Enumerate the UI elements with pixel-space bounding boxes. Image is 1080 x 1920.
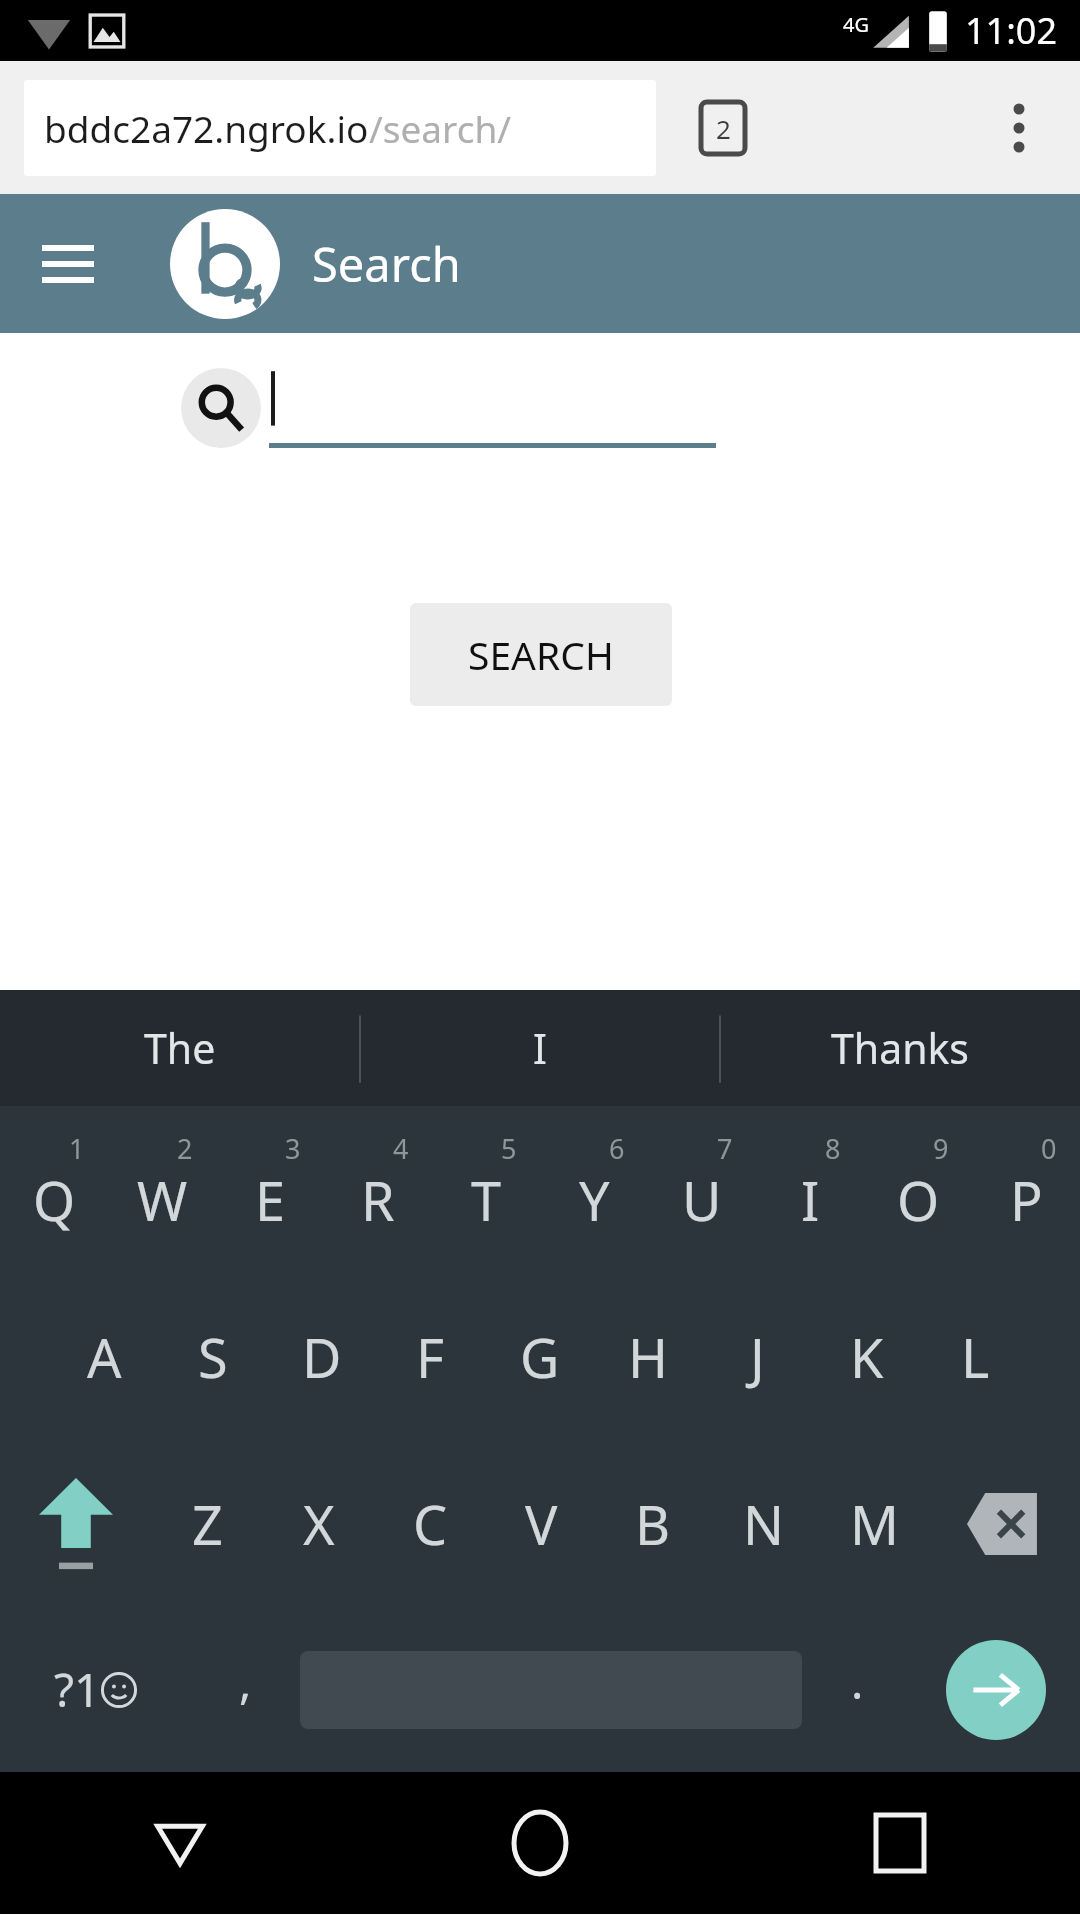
- staticText: 2: [177, 1130, 193, 1167]
- staticText: W: [137, 1163, 188, 1237]
- staticText: O: [897, 1163, 940, 1237]
- staticText: ?1: [54, 1658, 101, 1721]
- button[interactable]: N: [708, 1440, 819, 1607]
- button[interactable]: [269, 368, 716, 448]
- button[interactable]: 6: [540, 1106, 648, 1273]
- button[interactable]: Z: [151, 1440, 263, 1607]
- button[interactable]: Tabs: [688, 93, 758, 163]
- staticText: L: [961, 1320, 990, 1394]
- button[interactable]: Back: [0, 1772, 360, 1914]
- button[interactable]: Menu: [28, 224, 108, 304]
- button[interactable]: Search: [181, 368, 261, 448]
- staticText: T: [471, 1163, 502, 1237]
- button[interactable]: L: [921, 1273, 1030, 1440]
- staticText: Search: [312, 232, 461, 296]
- button[interactable]: SEARCH: [410, 603, 672, 706]
- button[interactable]: A: [50, 1273, 158, 1440]
- staticText: bddc2a72.ngrok.io: [44, 103, 369, 153]
- button[interactable]: 9: [864, 1106, 972, 1273]
- button[interactable]: F: [376, 1273, 485, 1440]
- staticText: 9: [933, 1130, 949, 1167]
- button[interactable]: The: [0, 990, 360, 1106]
- staticText: .: [851, 1650, 864, 1713]
- button[interactable]: 5: [432, 1106, 540, 1273]
- staticText: N: [743, 1487, 785, 1561]
- button[interactable]: B: [597, 1440, 708, 1607]
- button[interactable]: 7: [648, 1106, 756, 1273]
- button[interactable]: M: [819, 1440, 930, 1607]
- staticText: F: [416, 1320, 445, 1394]
- button[interactable]: Backspace: [930, 1440, 1080, 1607]
- staticText: C: [413, 1487, 448, 1561]
- button[interactable]: I: [360, 990, 720, 1106]
- staticText: K: [850, 1320, 884, 1394]
- button[interactable]: Symbols: [0, 1607, 190, 1772]
- button[interactable]: 4: [324, 1106, 432, 1273]
- staticText: D: [302, 1320, 342, 1394]
- staticText: J: [750, 1320, 765, 1394]
- staticText: 5: [501, 1130, 517, 1167]
- button[interactable]: Logo: [170, 209, 280, 319]
- staticText: 11:02: [965, 6, 1058, 55]
- staticText: 7: [717, 1130, 733, 1167]
- staticText: I: [533, 1020, 547, 1076]
- staticText: Y: [579, 1163, 610, 1237]
- button[interactable]: H: [594, 1273, 703, 1440]
- button[interactable]: K: [812, 1273, 921, 1440]
- staticText: 4: [393, 1130, 409, 1167]
- staticText: Q: [33, 1163, 76, 1237]
- staticText: P: [1010, 1163, 1043, 1237]
- staticText: 2: [716, 111, 731, 146]
- staticText: 4G: [843, 11, 869, 38]
- staticText: U: [682, 1163, 722, 1237]
- button[interactable]: bddc2a72.ngrok.io: [24, 80, 656, 176]
- button[interactable]: J: [703, 1273, 812, 1440]
- button[interactable]: .: [802, 1607, 912, 1772]
- staticText: 6: [609, 1130, 625, 1167]
- staticText: ,: [239, 1650, 252, 1713]
- staticText: H: [628, 1320, 669, 1394]
- staticText: Z: [192, 1487, 223, 1561]
- button[interactable]: Home: [360, 1772, 720, 1914]
- staticText: Thanks: [831, 1020, 970, 1076]
- staticText: S: [198, 1320, 228, 1394]
- button[interactable]: 1: [0, 1106, 108, 1273]
- staticText: The: [144, 1020, 216, 1076]
- staticText: SEARCH: [468, 628, 614, 681]
- staticText: 8: [825, 1130, 841, 1167]
- staticText: M: [850, 1487, 899, 1561]
- button[interactable]: Enter: [946, 1640, 1046, 1740]
- button[interactable]: D: [267, 1273, 376, 1440]
- button[interactable]: ,: [190, 1607, 300, 1772]
- button[interactable]: Recents: [720, 1772, 1080, 1914]
- button[interactable]: Shift: [0, 1440, 151, 1607]
- staticText: E: [255, 1163, 286, 1237]
- staticText: I: [801, 1163, 820, 1237]
- button[interactable]: X: [263, 1440, 375, 1607]
- staticText: 3: [285, 1130, 301, 1167]
- staticText: 1: [69, 1130, 85, 1167]
- button[interactable]: More options: [984, 93, 1054, 163]
- staticText: 0: [1041, 1130, 1057, 1167]
- button[interactable]: Thanks: [720, 990, 1080, 1106]
- button[interactable]: 0: [972, 1106, 1080, 1273]
- button[interactable]: C: [375, 1440, 486, 1607]
- button[interactable]: 3: [216, 1106, 324, 1273]
- button[interactable]: 2: [108, 1106, 216, 1273]
- button[interactable]: 8: [756, 1106, 864, 1273]
- staticText: G: [520, 1320, 560, 1394]
- button[interactable]: G: [485, 1273, 594, 1440]
- staticText: X: [303, 1487, 335, 1561]
- button[interactable]: V: [486, 1440, 597, 1607]
- staticText: A: [87, 1320, 122, 1394]
- button[interactable]: S: [158, 1273, 267, 1440]
- staticText: V: [525, 1487, 558, 1561]
- staticText: /search/: [369, 103, 512, 153]
- staticText: B: [635, 1487, 671, 1561]
- staticText: R: [361, 1163, 395, 1237]
